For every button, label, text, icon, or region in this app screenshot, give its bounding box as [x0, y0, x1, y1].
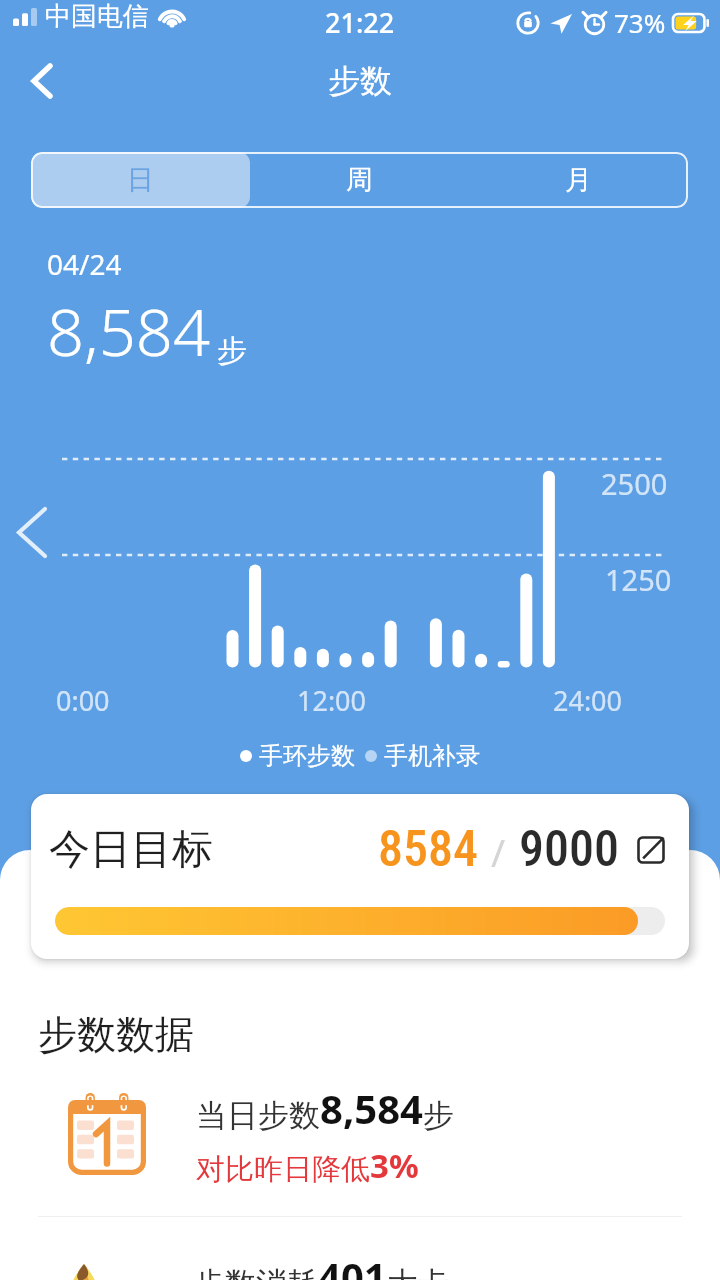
staticText: 月 — [565, 163, 592, 197]
staticText: / — [491, 826, 506, 878]
staticText: 73% — [614, 5, 666, 40]
button[interactable]: Back — [16, 55, 68, 107]
button[interactable]: Previous day — [4, 504, 60, 560]
staticText: 步数消耗 — [194, 1264, 318, 1280]
staticText: 0:00 — [56, 682, 110, 719]
staticText: 12:00 — [297, 682, 367, 719]
staticText: 手机补录 — [384, 741, 480, 771]
staticText: 步数 — [328, 61, 392, 101]
button[interactable]: Edit goal — [637, 836, 665, 864]
staticText: 8,584 — [320, 1081, 423, 1135]
staticText: 大卡 — [387, 1264, 449, 1280]
staticText: 对比昨日降低 — [196, 1151, 370, 1188]
button[interactable]: 日 — [31, 152, 250, 208]
staticText: 21:22 — [325, 4, 395, 41]
staticText: 9000 — [519, 820, 619, 879]
staticText: 3% — [370, 1143, 419, 1188]
staticText: 1250 — [605, 560, 672, 599]
staticText: 步 — [423, 1096, 454, 1135]
button[interactable]: 当日步数 — [0, 1078, 720, 1190]
staticText: 周 — [346, 163, 373, 197]
button[interactable]: 周 — [250, 152, 469, 208]
staticText: 手环步数 — [259, 741, 355, 771]
staticText: 8584 — [378, 820, 478, 879]
button[interactable]: 月 — [469, 152, 688, 208]
staticText: 当日步数 — [196, 1096, 320, 1135]
button[interactable]: 步数消耗 — [0, 1220, 720, 1280]
staticText: 步 — [217, 332, 247, 370]
staticText: 24:00 — [553, 682, 623, 719]
staticText: 04/24 — [47, 245, 122, 283]
staticText: 步数数据 — [38, 1010, 194, 1059]
staticText: 今日目标 — [49, 824, 213, 876]
staticText: 日 — [127, 163, 154, 197]
staticText: 2500 — [601, 464, 668, 503]
staticText: 8,584 — [47, 287, 211, 376]
staticText: 401 — [318, 1249, 387, 1280]
staticText: 中国电信 — [45, 0, 149, 33]
button[interactable]: 今日目标 — [31, 794, 689, 959]
